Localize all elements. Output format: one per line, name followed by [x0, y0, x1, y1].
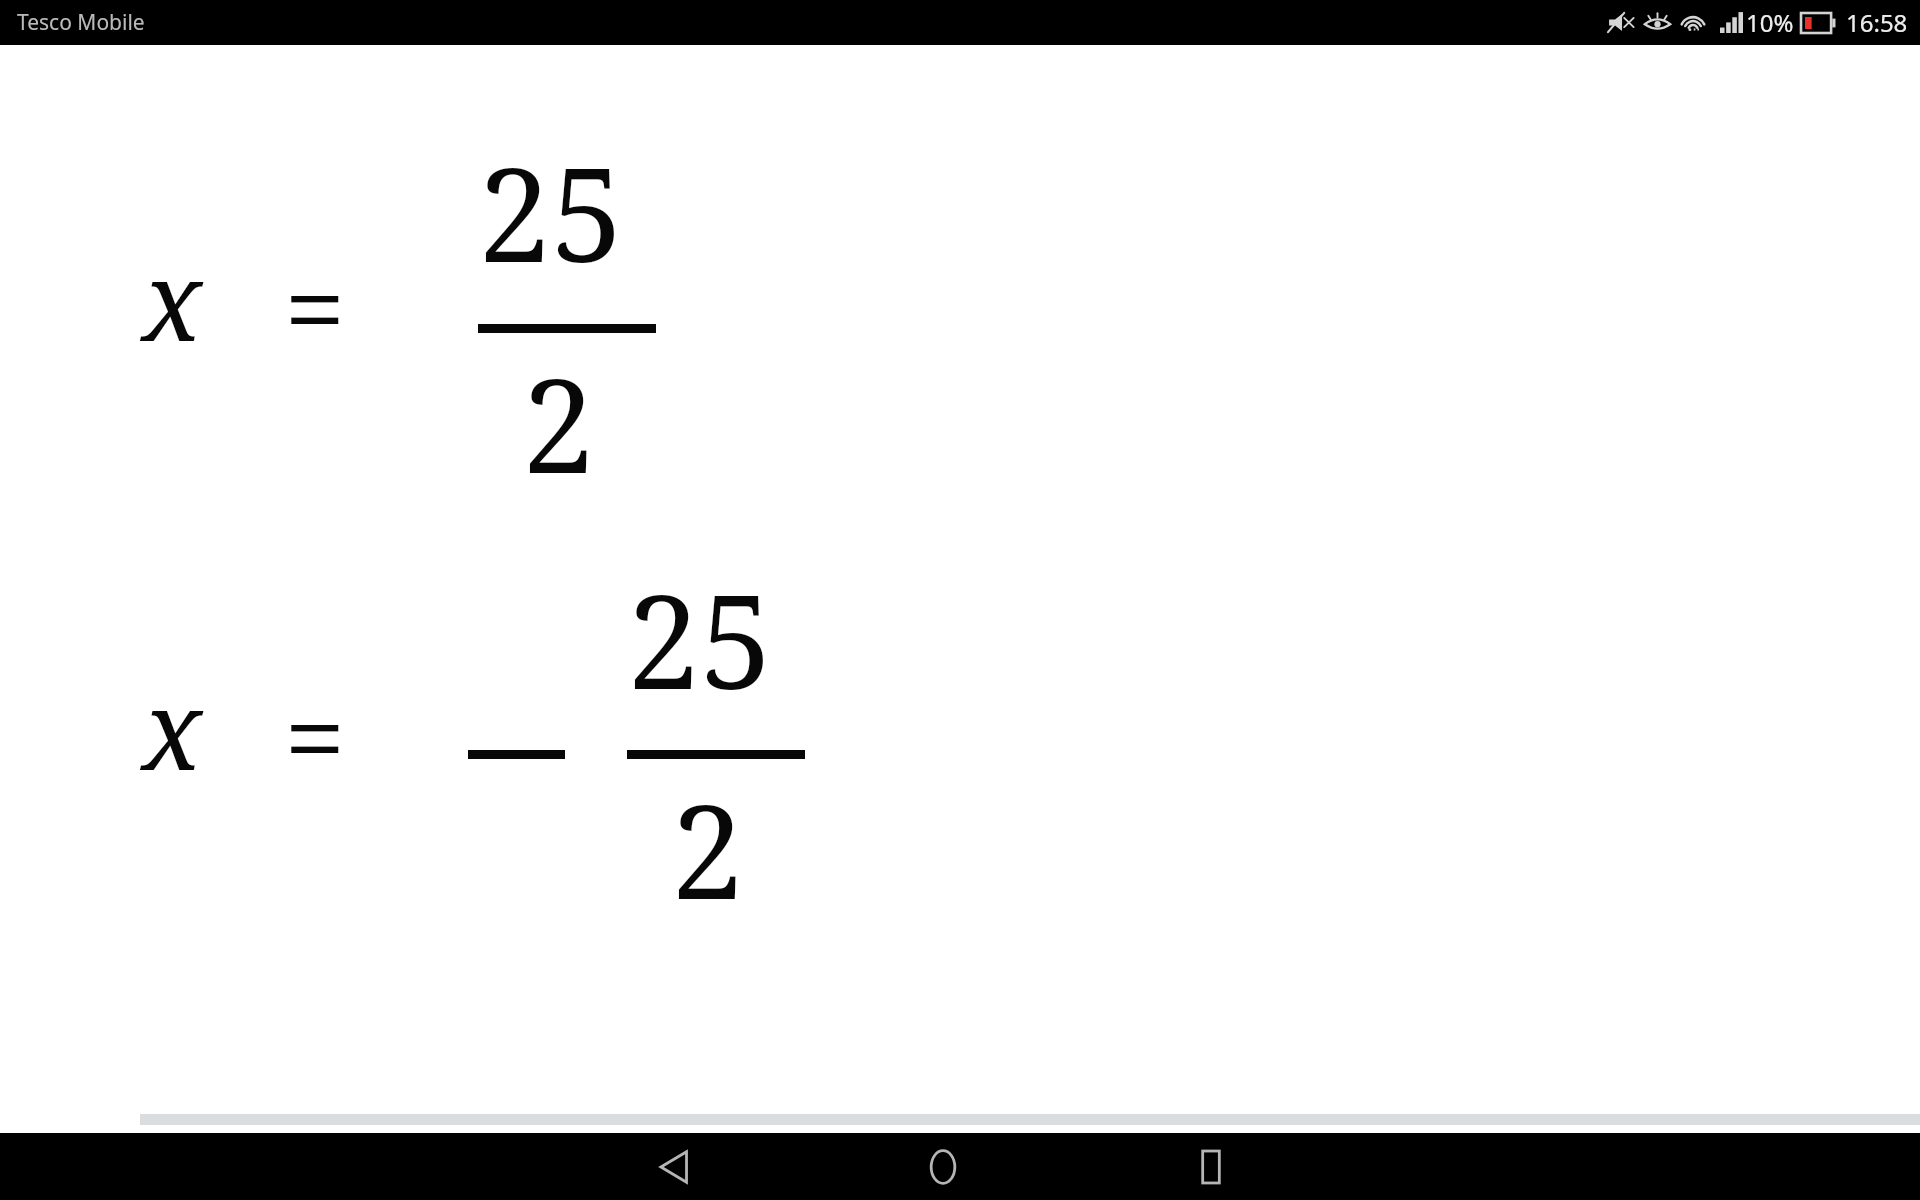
- staticText: 25: [478, 123, 624, 300]
- staticText: x: [142, 223, 203, 373]
- staticText: 16:58: [1846, 6, 1908, 39]
- staticText: =: [284, 660, 346, 810]
- staticText: 10%: [1746, 6, 1794, 39]
- button[interactable]: Back: [630, 1133, 720, 1200]
- staticText: Tesco Mobile: [17, 8, 145, 37]
- button[interactable]: Recent apps: [1166, 1133, 1256, 1200]
- staticText: 2: [671, 760, 744, 937]
- staticText: =: [284, 231, 346, 381]
- staticText: x: [142, 652, 203, 802]
- staticText: 25: [627, 550, 773, 727]
- staticText: 2: [522, 334, 595, 511]
- button[interactable]: Home: [898, 1133, 988, 1200]
